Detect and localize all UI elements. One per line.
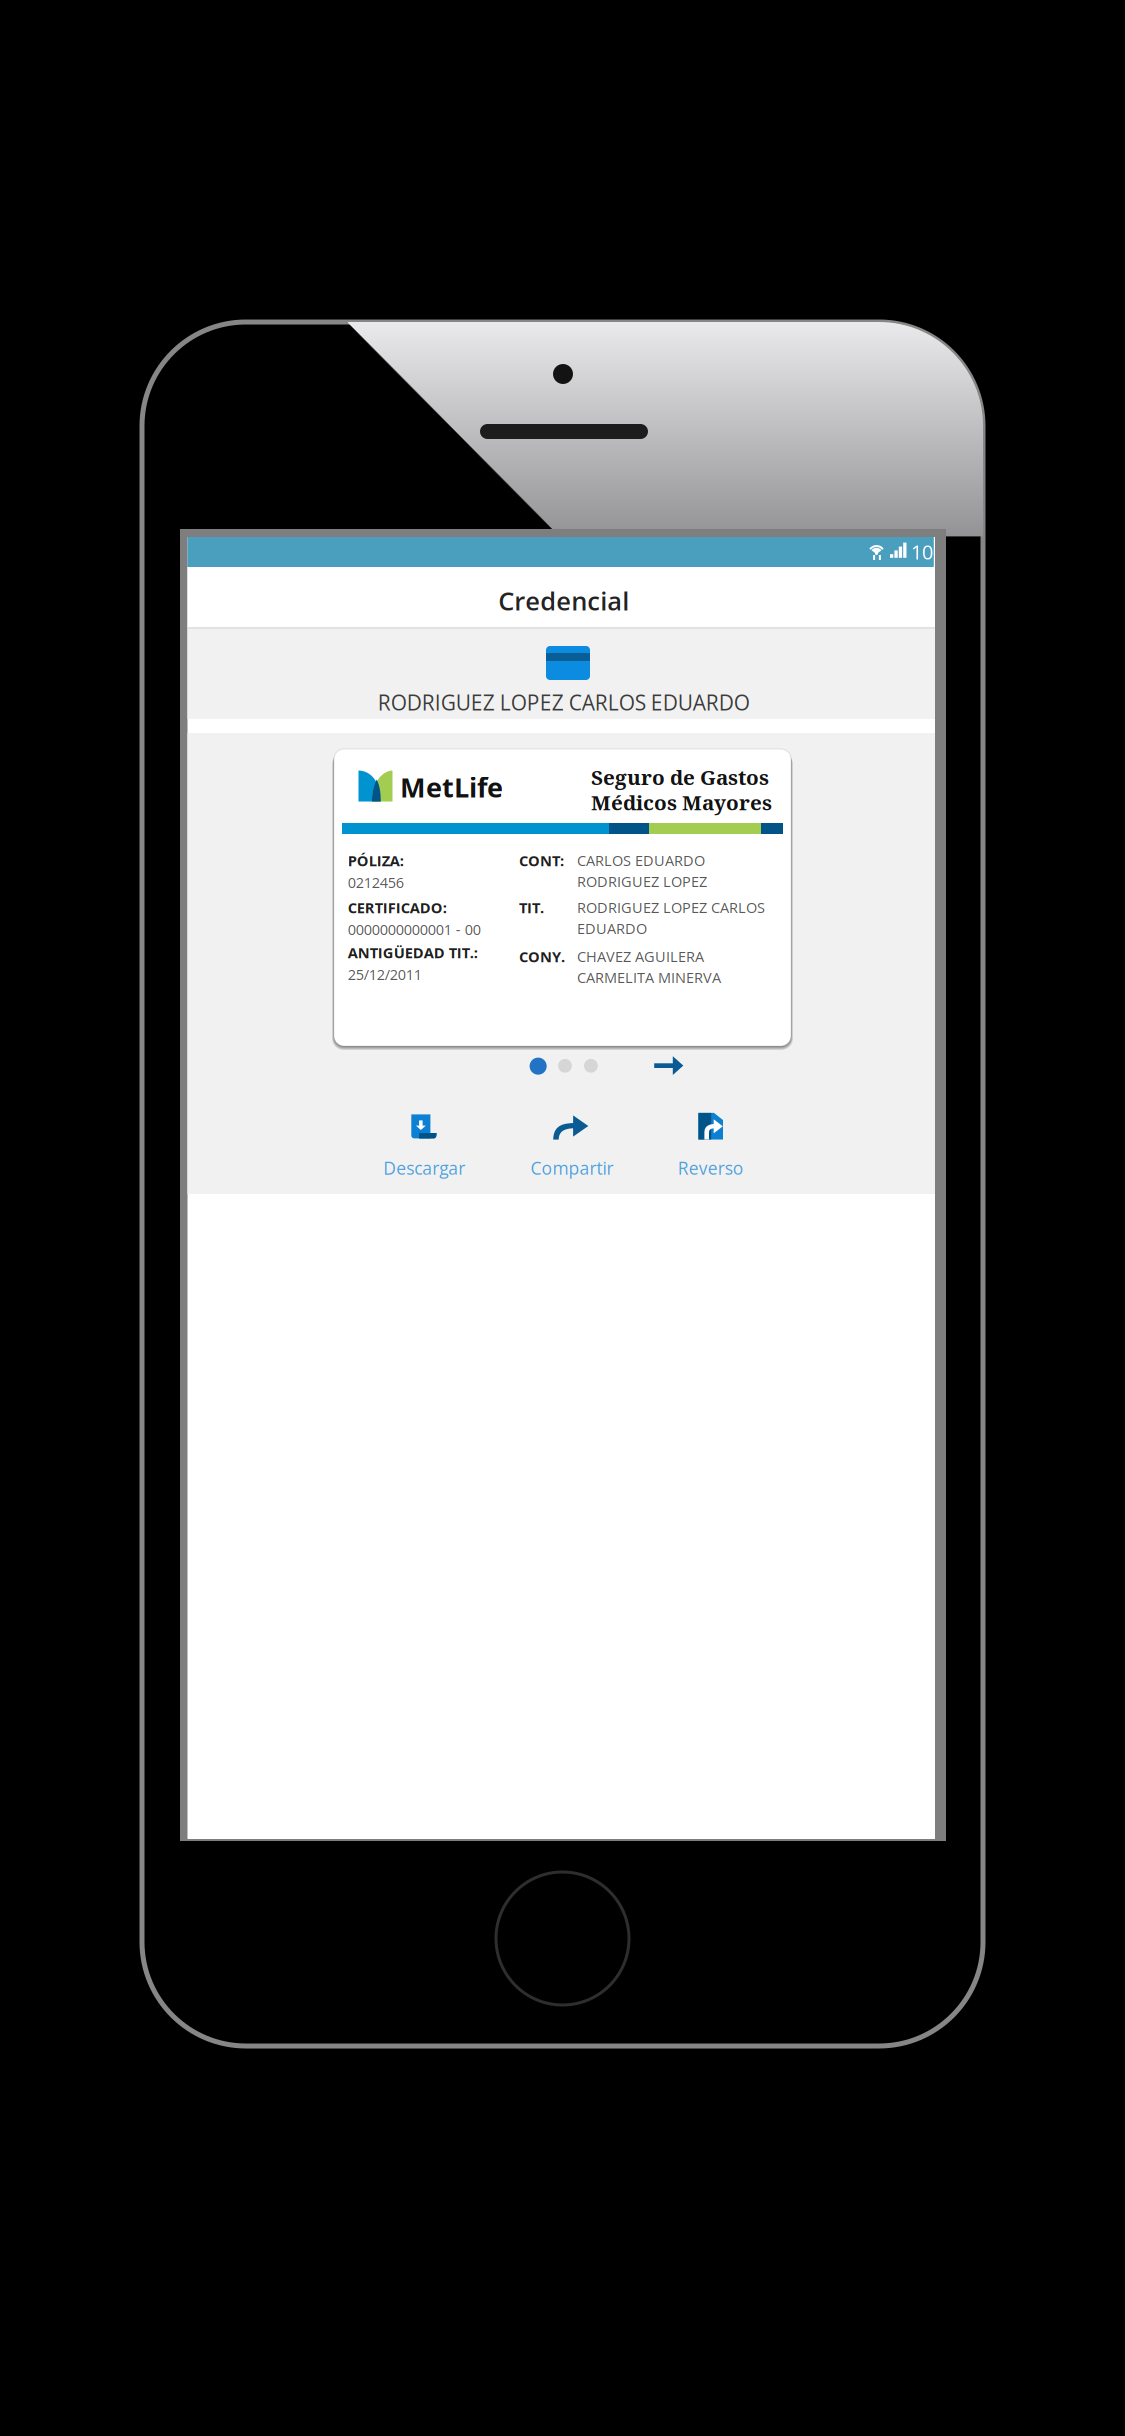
staticText: TIT. [519, 897, 544, 917]
staticText: RODRIGUEZ LOPEZ CARLOS [577, 897, 765, 917]
staticText: ANTIGÜEDAD TIT.: [348, 942, 478, 962]
button[interactable]: Descargar [364, 1103, 484, 1183]
staticText: CERTIFICADO: [348, 897, 447, 917]
staticText: MetLife [400, 769, 503, 805]
button[interactable]: Compartir [512, 1103, 632, 1183]
staticText: Descargar [383, 1156, 465, 1180]
staticText: 0212456 [348, 872, 404, 892]
staticText: Compartir [530, 1156, 613, 1180]
staticText: 100 [911, 538, 944, 565]
button[interactable]: Reverso [651, 1103, 771, 1183]
staticText: CONT: [519, 850, 564, 870]
staticText: Médicos Mayores [591, 788, 772, 816]
staticText: RODRIGUEZ LOPEZ [577, 871, 707, 891]
staticText: Credencial [498, 583, 629, 618]
staticText: RODRIGUEZ LOPEZ CARLOS EDUARDO [378, 688, 750, 716]
staticText: 25/12/2011 [348, 964, 422, 984]
staticText: EDUARDO [577, 918, 647, 938]
staticText: CHAVEZ AGUILERA [577, 946, 704, 966]
staticText: CONY. [519, 946, 565, 966]
button[interactable]: Siguiente credencial [654, 1056, 683, 1075]
staticText: CARLOS EDUARDO [577, 850, 705, 870]
staticText: Reverso [678, 1156, 744, 1180]
staticText: CARMELITA MINERVA [577, 967, 721, 987]
staticText: Seguro de Gastos [591, 763, 769, 791]
staticText: 0000000000001 - 00 [348, 919, 481, 939]
staticText: PÓLIZA: [348, 850, 404, 870]
